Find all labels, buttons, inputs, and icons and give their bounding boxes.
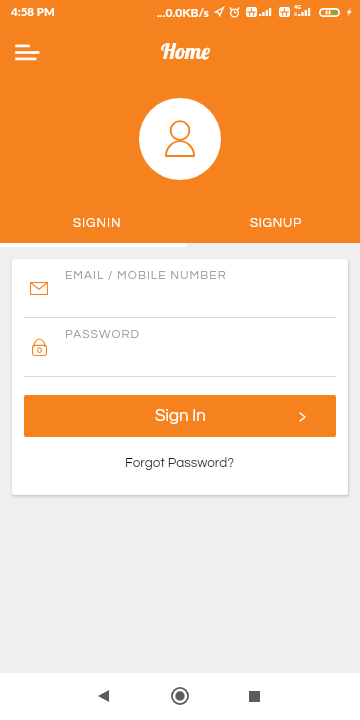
button[interactable]: Home (160, 676, 200, 716)
staticText: 4:58 PM (11, 5, 55, 19)
staticText: SIGNUP (250, 216, 302, 229)
staticText: Sign In (155, 407, 206, 425)
button[interactable]: SIGNUP (189, 204, 360, 240)
button[interactable]: SIGNIN (4, 204, 191, 240)
staticText: EMAIL / MOBILE NUMBER (65, 269, 227, 281)
button[interactable]: Back (83, 676, 123, 716)
button[interactable]: Profile picture (139, 98, 221, 180)
button[interactable]: Forgot Password? (120, 450, 240, 476)
button[interactable]: Open navigation menu (4, 33, 52, 69)
button[interactable]: Sign In (24, 395, 336, 437)
button[interactable]: Recent apps (234, 676, 274, 716)
staticText: Forgot Password? (125, 456, 235, 470)
staticText: SIGNIN (73, 216, 122, 229)
staticText: Home (160, 37, 211, 65)
staticText: 4G (294, 4, 302, 11)
staticText: PASSWORD (65, 328, 141, 340)
staticText: ...0.0KB/s (157, 5, 209, 19)
